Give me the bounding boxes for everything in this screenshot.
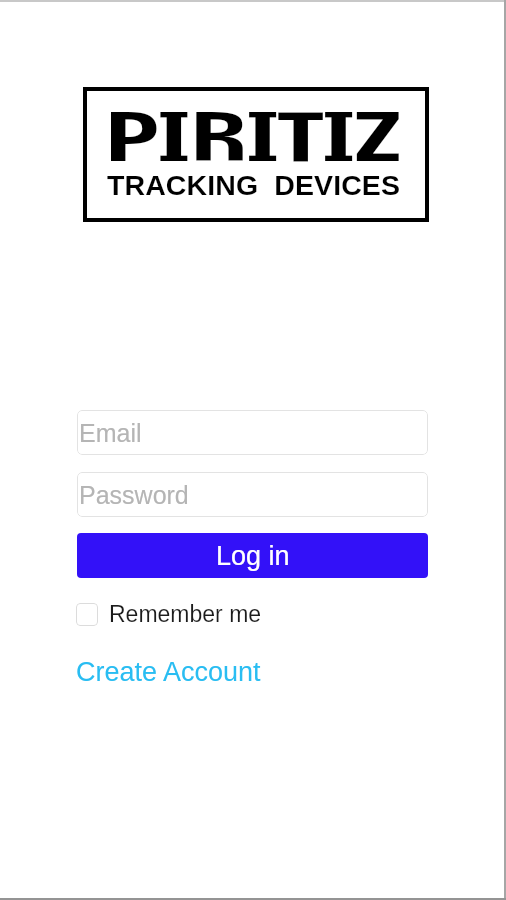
staticText: Create Account: [76, 657, 261, 687]
staticText: Remember me: [109, 601, 262, 627]
button[interactable]: Remember me: [76, 601, 262, 627]
button[interactable]: Create Account: [76, 657, 261, 687]
button[interactable]: Email: [77, 410, 428, 455]
staticText: Email: [79, 419, 142, 447]
staticText: Log in: [216, 541, 290, 571]
staticText: Password: [79, 481, 189, 509]
button[interactable]: Log in: [77, 533, 428, 578]
button[interactable]: Password: [77, 472, 428, 517]
staticText: TRACKING DEVICES: [107, 169, 401, 201]
staticText: PIRITIZ: [105, 109, 401, 178]
